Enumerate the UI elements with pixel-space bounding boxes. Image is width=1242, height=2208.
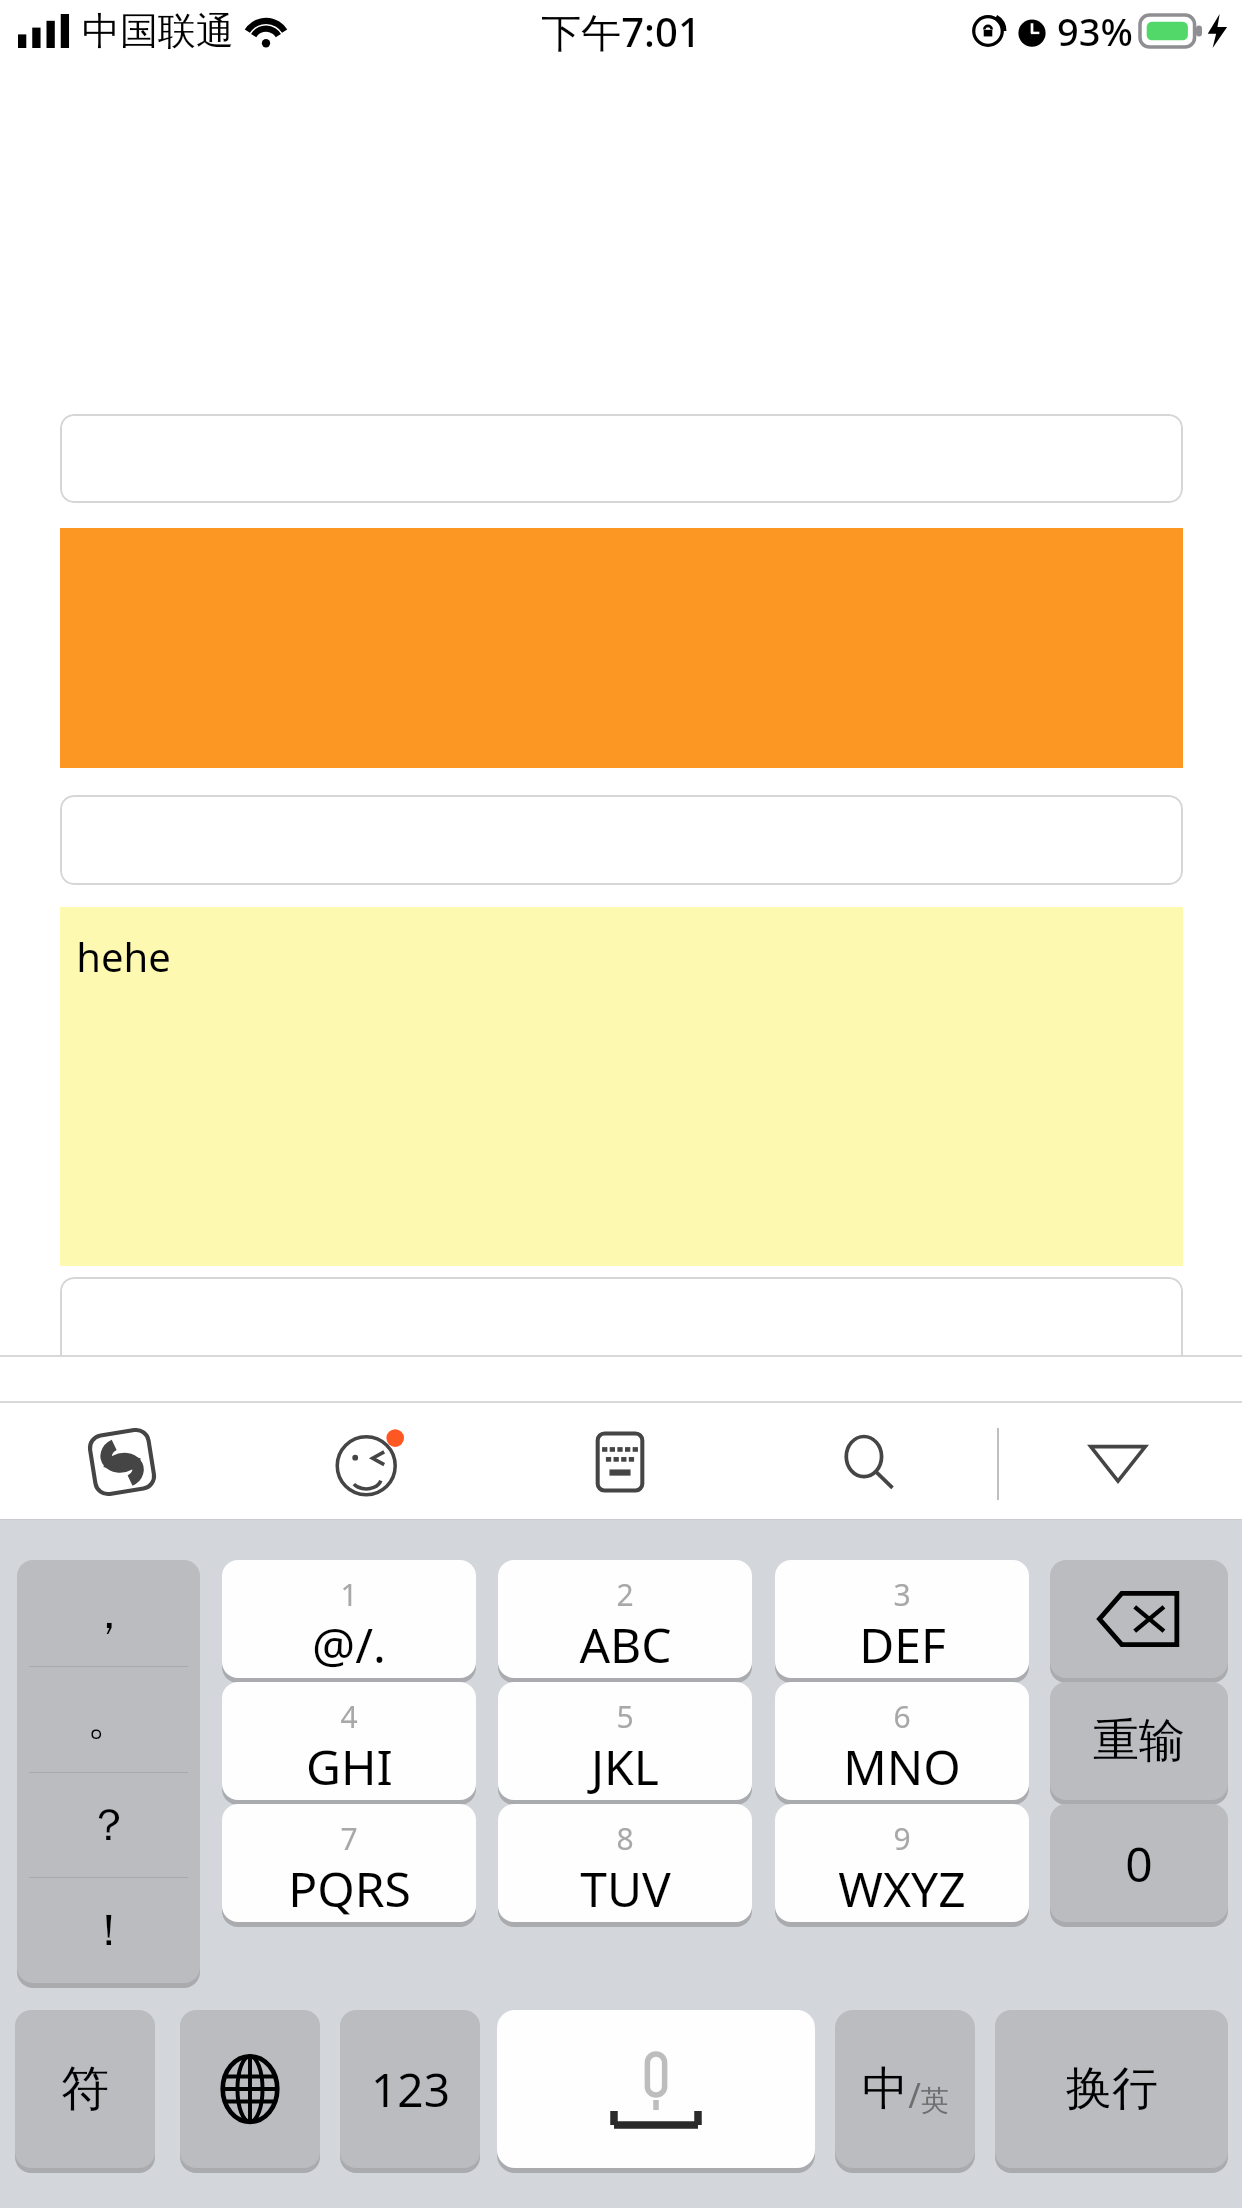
button[interactable]: Backspace [1050, 1560, 1228, 1678]
staticText: 中 [862, 2060, 908, 2118]
staticText: 0 [1125, 1831, 1153, 1896]
button[interactable]: 8 [498, 1804, 752, 1922]
staticText: WXYZ [838, 1856, 966, 1921]
staticText: DEF [859, 1612, 946, 1677]
button[interactable]: 重输 [1050, 1682, 1228, 1800]
button[interactable] [60, 1277, 1183, 1357]
button[interactable]: 换行 [995, 2010, 1228, 2168]
button[interactable]: 5 [498, 1682, 752, 1800]
staticText: @/. [312, 1612, 386, 1677]
staticText: ， [87, 1586, 131, 1641]
staticText: 4 [340, 1696, 358, 1737]
staticText: 符 [61, 2059, 109, 2119]
button[interactable] [60, 414, 1183, 503]
button[interactable]: 7 [222, 1804, 476, 1922]
button[interactable]: Space, hold for voice input [497, 2010, 815, 2168]
button[interactable]: Hide keyboard [1043, 1403, 1193, 1520]
staticText: 下午7:01 [541, 4, 701, 59]
button[interactable]: 4 [222, 1682, 476, 1800]
staticText: TUV [580, 1856, 671, 1921]
staticText: 中国联通 [82, 7, 234, 55]
button[interactable]: Keyboard layout [545, 1403, 695, 1520]
button[interactable]: 123 [340, 2010, 480, 2168]
button[interactable]: Switch language [180, 2010, 320, 2168]
staticText: 。 [87, 1692, 131, 1747]
staticText: 7 [340, 1818, 358, 1859]
button[interactable]: Sogou input method [47, 1403, 197, 1520]
staticText: JKL [591, 1734, 659, 1799]
staticText: 93% [1057, 5, 1133, 57]
staticText: GHI [306, 1734, 393, 1799]
staticText: hehe [76, 929, 171, 983]
staticText: 6 [893, 1696, 911, 1737]
button[interactable]: 2 [498, 1560, 752, 1678]
button[interactable]: Search [793, 1403, 943, 1520]
staticText: 123 [371, 2058, 450, 2121]
staticText: 换行 [1066, 2060, 1158, 2118]
button[interactable]: 中 [835, 2010, 975, 2168]
button[interactable]: 3 [775, 1560, 1029, 1678]
staticText: ！ [87, 1903, 131, 1958]
button[interactable]: 9 [775, 1804, 1029, 1922]
staticText: PQRS [288, 1856, 411, 1921]
staticText: MNO [843, 1734, 961, 1799]
staticText: 5 [616, 1696, 634, 1737]
staticText: 3 [893, 1574, 911, 1615]
button[interactable]: 符 [15, 2010, 155, 2168]
staticText: 2 [616, 1574, 634, 1615]
staticText: 1 [340, 1574, 358, 1615]
button[interactable]: ， [17, 1560, 200, 1983]
button[interactable]: Emoji [295, 1403, 445, 1520]
staticText: / [908, 2072, 921, 2118]
button[interactable]: hehe [60, 907, 1183, 1266]
staticText: 英 [921, 2083, 949, 2118]
button[interactable] [60, 795, 1183, 885]
staticText: 9 [893, 1818, 911, 1859]
staticText: 重输 [1093, 1712, 1185, 1770]
staticText: 8 [616, 1818, 634, 1859]
button[interactable]: 0 [1050, 1804, 1228, 1922]
button[interactable]: 6 [775, 1682, 1029, 1800]
button[interactable]: 1 [222, 1560, 476, 1678]
staticText: ABC [579, 1612, 672, 1677]
staticText: ？ [87, 1798, 131, 1853]
